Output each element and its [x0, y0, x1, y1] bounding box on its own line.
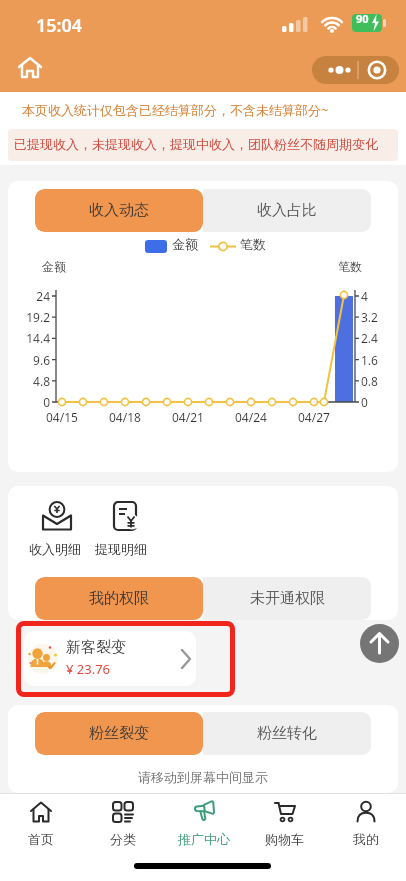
staticText: 粉丝转化	[257, 724, 317, 743]
button[interactable]: 推广中心	[163, 799, 244, 847]
staticText: 笔数	[338, 259, 362, 274]
staticText: 04/21	[172, 409, 204, 425]
button[interactable]: 粉丝转化	[203, 712, 371, 755]
staticText: 请移动到屏幕中间显示	[138, 769, 268, 785]
staticText: 粉丝裂变	[89, 724, 149, 743]
staticText: ¥ 23.76	[66, 660, 111, 678]
button[interactable]: 分类	[82, 799, 163, 847]
staticText: 1.6	[361, 352, 378, 368]
button[interactable]: 我的	[325, 799, 406, 847]
button[interactable]: 收入占比	[203, 189, 371, 232]
button[interactable]: 首页	[0, 799, 82, 847]
staticText: 14.4	[26, 330, 50, 346]
staticText: 4.8	[33, 373, 50, 389]
button[interactable]	[360, 624, 399, 663]
staticText: 笔数	[240, 236, 266, 252]
staticText: 0	[361, 394, 368, 410]
button[interactable]: 提现明细	[94, 496, 164, 566]
staticText: 04/18	[109, 409, 141, 425]
staticText: 首页	[28, 831, 54, 847]
staticText: 04/27	[298, 409, 330, 425]
staticText: 推广中心	[178, 831, 230, 847]
staticText: 金额	[172, 236, 198, 252]
staticText: 04/15	[46, 409, 78, 425]
staticText: 本页收入统计仅包含已经结算部分，不含未结算部分~	[22, 101, 329, 119]
staticText: 0.8	[361, 373, 378, 389]
staticText: 4	[361, 288, 368, 304]
button[interactable]: 新客裂变	[24, 631, 196, 686]
button[interactable]	[14, 52, 46, 84]
button[interactable]: 未开通权限	[203, 577, 371, 620]
staticText: 我的	[353, 831, 379, 847]
staticText: 提现明细	[95, 541, 147, 557]
button[interactable]	[312, 56, 399, 84]
staticText: 金额	[42, 259, 66, 274]
staticText: 0	[43, 394, 50, 410]
button[interactable]: 购物车	[244, 799, 325, 847]
staticText: 15:04	[36, 13, 83, 38]
staticText: 收入占比	[257, 201, 317, 220]
button[interactable]: 粉丝裂变	[35, 712, 203, 755]
staticText: 购物车	[265, 831, 304, 847]
staticText: 04/24	[235, 409, 267, 425]
staticText: 分类	[110, 831, 136, 847]
staticText: 未开通权限	[250, 589, 325, 608]
staticText: 3.2	[361, 309, 378, 325]
staticText: 19.2	[26, 309, 50, 325]
button[interactable]: 收入动态	[35, 189, 203, 232]
button[interactable]: 收入明细	[26, 496, 96, 566]
staticText: 已提现收入，未提现收入，提现中收入，团队粉丝不随周期变化	[14, 136, 378, 152]
staticText: 收入明细	[29, 541, 81, 557]
staticText: 90	[356, 11, 369, 26]
staticText: 新客裂变	[66, 638, 126, 657]
staticText: 2.4	[361, 330, 378, 346]
staticText: 我的权限	[89, 589, 149, 608]
staticText: 9.6	[33, 352, 50, 368]
button[interactable]: 我的权限	[35, 577, 203, 620]
staticText: 收入动态	[89, 201, 149, 220]
staticText: 24	[36, 288, 50, 304]
